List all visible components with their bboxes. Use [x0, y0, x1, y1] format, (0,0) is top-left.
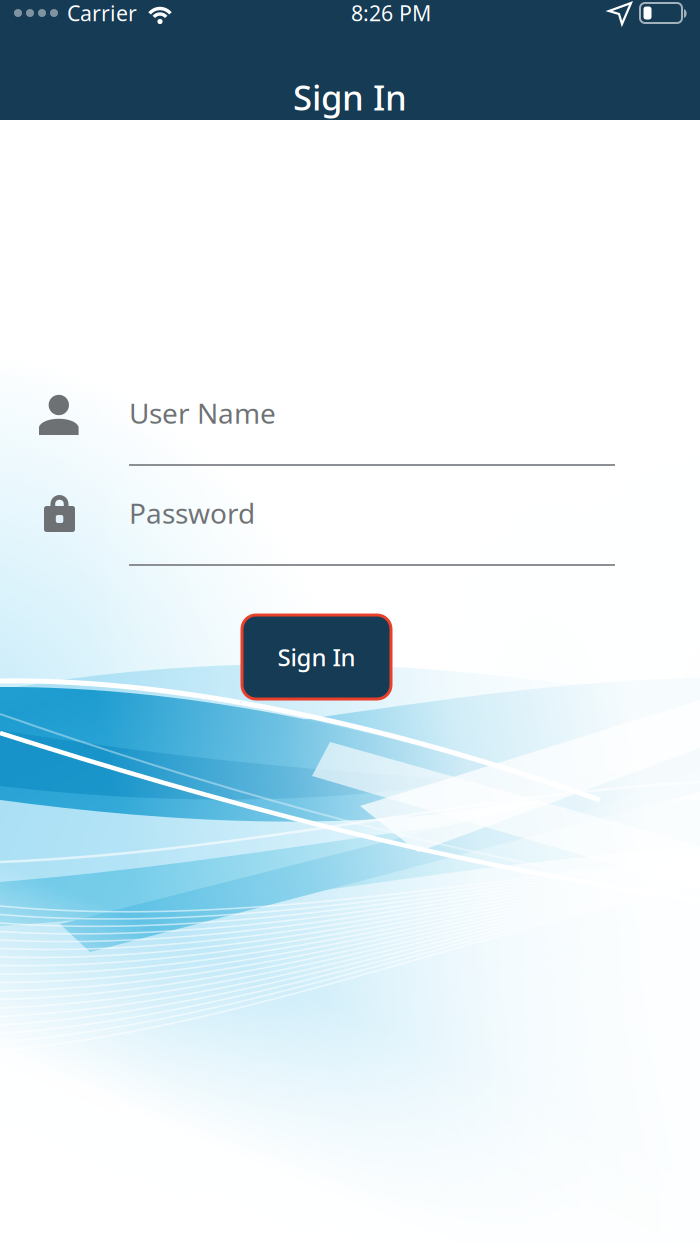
staticText: Sign In [277, 641, 355, 673]
staticText: User Name [129, 394, 276, 432]
button[interactable]: Sign In [242, 615, 391, 699]
staticText: Carrier [67, 0, 137, 27]
button[interactable]: Password [0, 486, 700, 578]
staticText: Sign In [293, 74, 407, 120]
staticText: Password [129, 494, 255, 532]
staticText: 8:26 PM [351, 0, 431, 27]
button[interactable]: User Name [0, 386, 700, 478]
